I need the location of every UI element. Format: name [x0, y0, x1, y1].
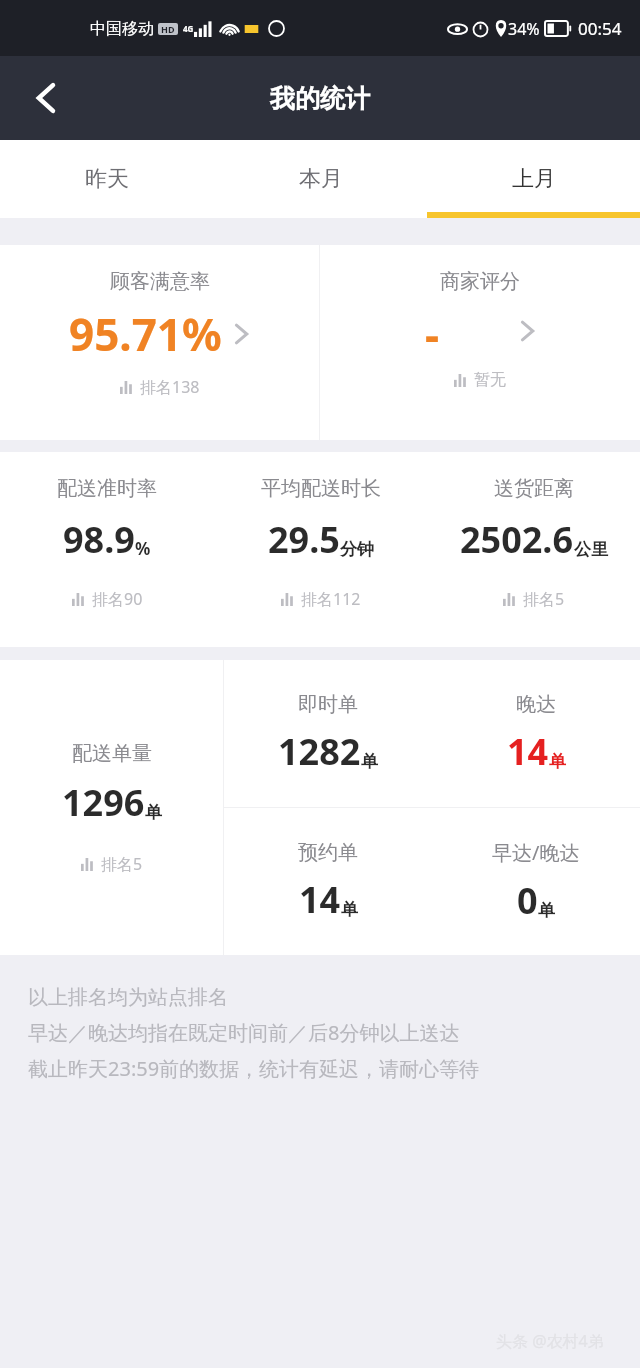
staticText: 中国移动 — [90, 19, 154, 39]
staticText: 即时单 — [298, 692, 358, 717]
staticText: 头条 @农村4弟 — [496, 1330, 604, 1352]
staticText: 1296 — [62, 778, 145, 827]
button[interactable]: 顾客满意率 — [0, 245, 319, 440]
staticText: 预约单 — [298, 840, 358, 865]
staticText: 排名5 — [523, 588, 565, 610]
button[interactable]: 商家评分 — [320, 245, 640, 440]
staticText: 14 — [507, 727, 549, 776]
staticText: 0 — [517, 876, 538, 925]
staticText: 晚达 — [516, 692, 556, 717]
staticText: 34% — [508, 18, 540, 40]
button[interactable]: 配送准时率 — [0, 452, 214, 647]
staticText: 00:54 — [578, 17, 622, 40]
staticText: % — [135, 537, 151, 560]
staticText: 单 — [549, 751, 566, 772]
staticText: 公里 — [574, 539, 608, 560]
staticText: 排名5 — [101, 853, 143, 875]
staticText: 商家评分 — [440, 269, 520, 294]
staticText: - — [425, 304, 440, 358]
staticText: 单 — [538, 900, 555, 921]
button[interactable]: 送货距离 — [427, 452, 640, 647]
button[interactable]: 预约单 — [224, 808, 432, 955]
button[interactable]: 即时单 — [224, 660, 432, 807]
staticText: 排名112 — [301, 588, 361, 610]
staticText: 4G — [183, 23, 194, 34]
button[interactable]: 晚达 — [432, 660, 640, 807]
staticText: 95.71% — [69, 304, 222, 364]
staticText: 平均配送时长 — [261, 476, 381, 501]
staticText: 早达/晚达 — [492, 839, 580, 866]
staticText: 送货距离 — [494, 476, 574, 501]
button[interactable]: 返回 — [0, 56, 92, 140]
staticText: 排名90 — [92, 588, 143, 610]
staticText: HD — [161, 23, 175, 35]
staticText: 本月 — [299, 165, 343, 193]
staticText: 截止昨天23:59前的数据，统计有延迟，请耐心等待 — [28, 1055, 480, 1082]
button[interactable]: 昨天 — [0, 140, 214, 218]
staticText: 排名138 — [140, 376, 200, 398]
button[interactable]: 早达/晚达 — [432, 808, 640, 955]
button[interactable]: 配送单量 — [0, 660, 223, 955]
staticText: 2502.6 — [460, 515, 574, 564]
staticText: 单 — [361, 751, 378, 772]
staticText: 暂无 — [474, 370, 506, 390]
staticText: 1282 — [278, 727, 361, 776]
staticText: 以上排名均为站点排名 — [28, 985, 228, 1010]
staticText: 上月 — [512, 165, 556, 193]
staticText: 14 — [299, 875, 341, 924]
staticText: 分钟 — [340, 539, 374, 560]
button[interactable]: 上月 — [427, 140, 640, 218]
button[interactable]: 平均配送时长 — [214, 452, 427, 647]
button[interactable]: 本月 — [214, 140, 427, 218]
staticText: 98.9 — [63, 515, 135, 564]
staticText: 早达／晚达均指在既定时间前／后8分钟以上送达 — [28, 1019, 460, 1046]
staticText: 29.5 — [268, 515, 340, 564]
staticText: 单 — [341, 899, 358, 920]
staticText: 配送单量 — [72, 741, 152, 766]
staticText: 顾客满意率 — [110, 269, 210, 294]
staticText: 我的统计 — [270, 83, 370, 114]
staticText: 昨天 — [85, 165, 129, 193]
staticText: 配送准时率 — [57, 476, 157, 501]
staticText: 单 — [145, 802, 162, 823]
